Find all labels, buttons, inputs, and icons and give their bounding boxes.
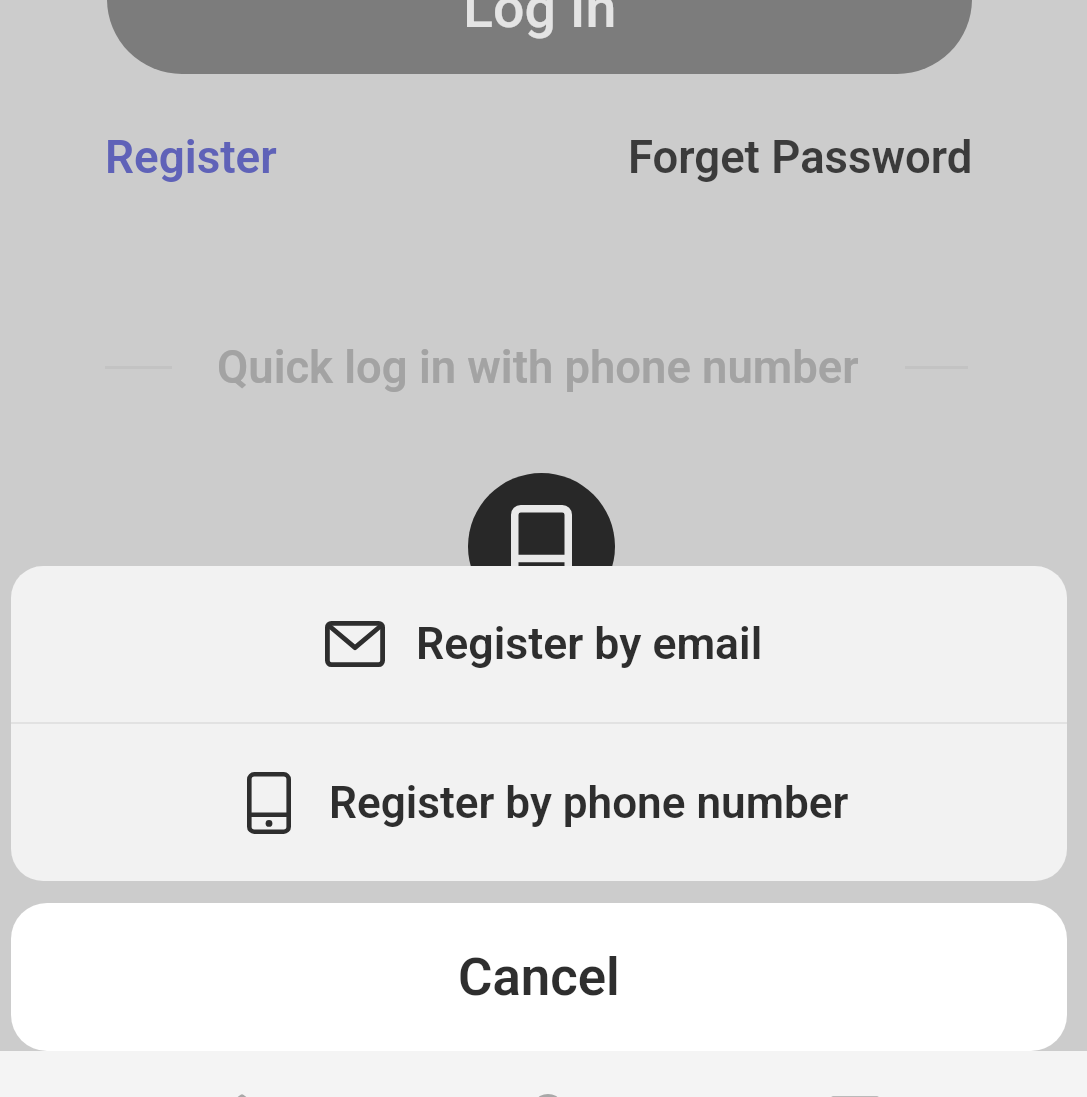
staticText: Forget Password bbox=[628, 131, 973, 184]
button[interactable]: Profile bbox=[799, 1051, 911, 1097]
button[interactable]: Register bbox=[105, 131, 277, 185]
button[interactable]: Cancel bbox=[11, 903, 1067, 1051]
button[interactable]: Log in with phone number bbox=[468, 473, 615, 620]
staticText: Register by email bbox=[416, 618, 763, 670]
staticText: Register by phone number bbox=[329, 777, 849, 829]
button[interactable]: Register by email bbox=[11, 566, 1067, 722]
staticText: Register bbox=[105, 131, 277, 185]
staticText: Quick log in with phone number bbox=[217, 341, 859, 394]
button[interactable]: Register by phone number bbox=[11, 724, 1067, 881]
button[interactable]: Home bbox=[186, 1051, 298, 1097]
staticText: Cancel bbox=[458, 946, 620, 1008]
button[interactable]: Orders bbox=[492, 1051, 604, 1097]
button[interactable]: Log In bbox=[107, 0, 972, 74]
button[interactable]: Forget Password bbox=[628, 131, 973, 184]
staticText: Log In bbox=[463, 0, 617, 41]
